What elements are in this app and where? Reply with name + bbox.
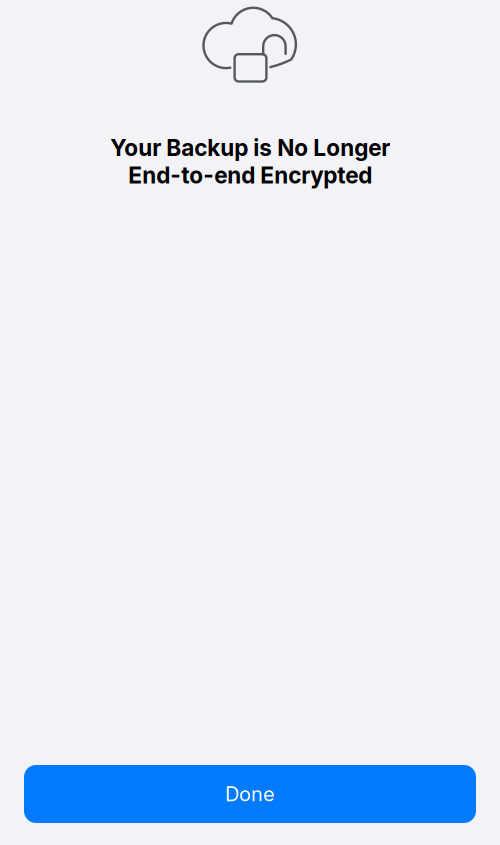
staticText: Done [225, 782, 275, 806]
staticText: Your Backup is No Longer End-to-end Encr… [110, 134, 390, 189]
button[interactable]: Done [24, 765, 476, 823]
